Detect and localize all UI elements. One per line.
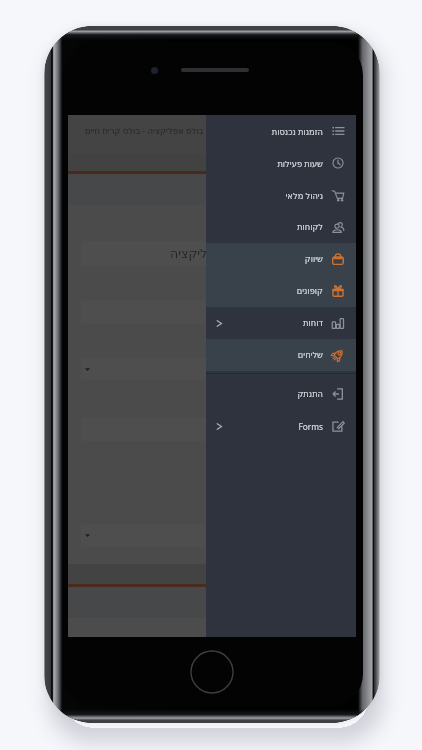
button[interactable]: שליחים [206, 339, 356, 371]
staticText: הזמנות נכנסות [271, 126, 323, 137]
button[interactable]: קופונים [206, 275, 356, 307]
staticText: שליחים [297, 350, 323, 360]
button[interactable]: שעות פעילות [206, 147, 356, 179]
button[interactable]: דוחות [206, 307, 356, 339]
button[interactable]: Forms [206, 410, 356, 442]
staticText: ניהול מלאי [285, 190, 323, 201]
button[interactable]: שיווק [206, 243, 356, 275]
staticText: לקוחות [297, 222, 323, 232]
staticText: Forms [298, 421, 323, 432]
button[interactable]: ניהול מלאי [206, 179, 356, 211]
staticText: התנתק [297, 389, 323, 399]
staticText: שיווק [304, 254, 323, 264]
staticText: קופונים [296, 286, 323, 296]
button[interactable]: הזמנות נכנסות [206, 115, 356, 147]
staticText: בולס אפליקציה - בולס קרית חיים [85, 125, 204, 137]
staticText: ליקציה [170, 246, 208, 261]
staticText: דוחות [303, 318, 323, 328]
button[interactable]: התנתק [206, 378, 356, 410]
staticText: שעות פעילות [277, 158, 323, 169]
button[interactable]: לקוחות [206, 211, 356, 243]
